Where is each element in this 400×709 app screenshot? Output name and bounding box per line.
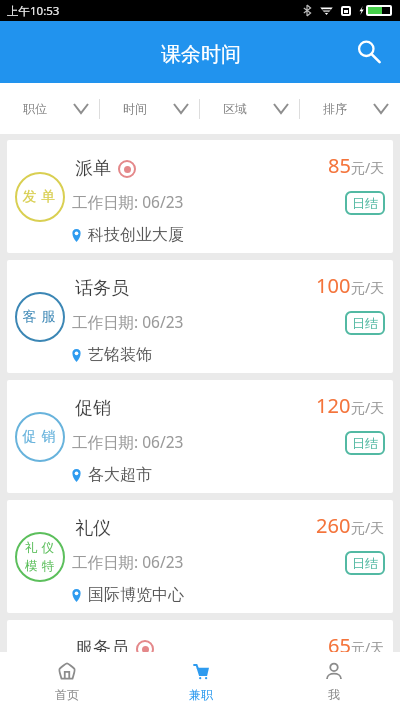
staticText: 礼仪 [75, 517, 111, 540]
button[interactable]: Me [267, 652, 400, 709]
button[interactable]: 发单 [7, 140, 393, 253]
staticText: 工作日期: 06/23 [72, 311, 184, 332]
staticText: 工作日期: 06/23 [72, 551, 184, 572]
staticText: 国际博览中心 [88, 585, 184, 605]
staticText: 时间 [123, 101, 147, 116]
staticText: 促销 [20, 428, 58, 446]
button[interactable]: 客服 [7, 260, 393, 373]
staticText: 元/天 [351, 638, 385, 652]
button[interactable]: 排序 [300, 83, 400, 134]
staticText: 发单 [20, 188, 58, 206]
button[interactable]: 区域 [200, 83, 300, 134]
staticText: 元/天 [351, 278, 385, 297]
button[interactable]: 时间 [100, 83, 200, 134]
staticText: 我 [328, 687, 340, 702]
button[interactable]: 礼仪 模特 [7, 500, 393, 613]
staticText: 上午10:53 [7, 3, 60, 19]
button[interactable]: 服务 [7, 620, 393, 652]
staticText: 各大超市 [88, 465, 152, 485]
staticText: 日结 [352, 555, 378, 571]
staticText: 艺铭装饰 [88, 345, 152, 365]
staticText: 首页 [55, 687, 79, 702]
staticText: 促销 [75, 397, 111, 420]
staticText: 派单 [75, 157, 111, 180]
staticText: 客服 [20, 308, 58, 326]
staticText: 260 [316, 512, 351, 539]
staticText: 65 [328, 632, 351, 652]
staticText: 工作日期: 06/23 [72, 431, 184, 452]
button[interactable]: 职位 [0, 83, 100, 134]
button[interactable]: Home [0, 652, 134, 709]
staticText: 120 [316, 392, 351, 419]
staticText: 兼职 [189, 687, 213, 702]
staticText: 100 [316, 272, 351, 299]
staticText: 服务员 [75, 637, 129, 652]
staticText: 日结 [352, 435, 378, 451]
button[interactable]: Search [352, 30, 394, 72]
staticText: 日结 [352, 195, 378, 211]
button[interactable]: 促销 [7, 380, 393, 493]
staticText: 元/天 [351, 398, 385, 417]
staticText: 工作日期: 06/23 [72, 191, 184, 212]
staticText: 日结 [352, 315, 378, 331]
staticText: 话务员 [75, 277, 129, 300]
staticText: 科技创业大厦 [88, 225, 184, 245]
staticText: 课余时间 [161, 42, 241, 67]
staticText: 85 [328, 152, 351, 179]
staticText: 元/天 [351, 518, 385, 537]
staticText: 礼仪 模特 [23, 540, 56, 574]
staticText: 区域 [223, 101, 247, 116]
staticText: 排序 [323, 101, 347, 116]
button[interactable]: Jobs [134, 652, 267, 709]
staticText: 职位 [23, 101, 47, 116]
staticText: 元/天 [351, 158, 385, 177]
